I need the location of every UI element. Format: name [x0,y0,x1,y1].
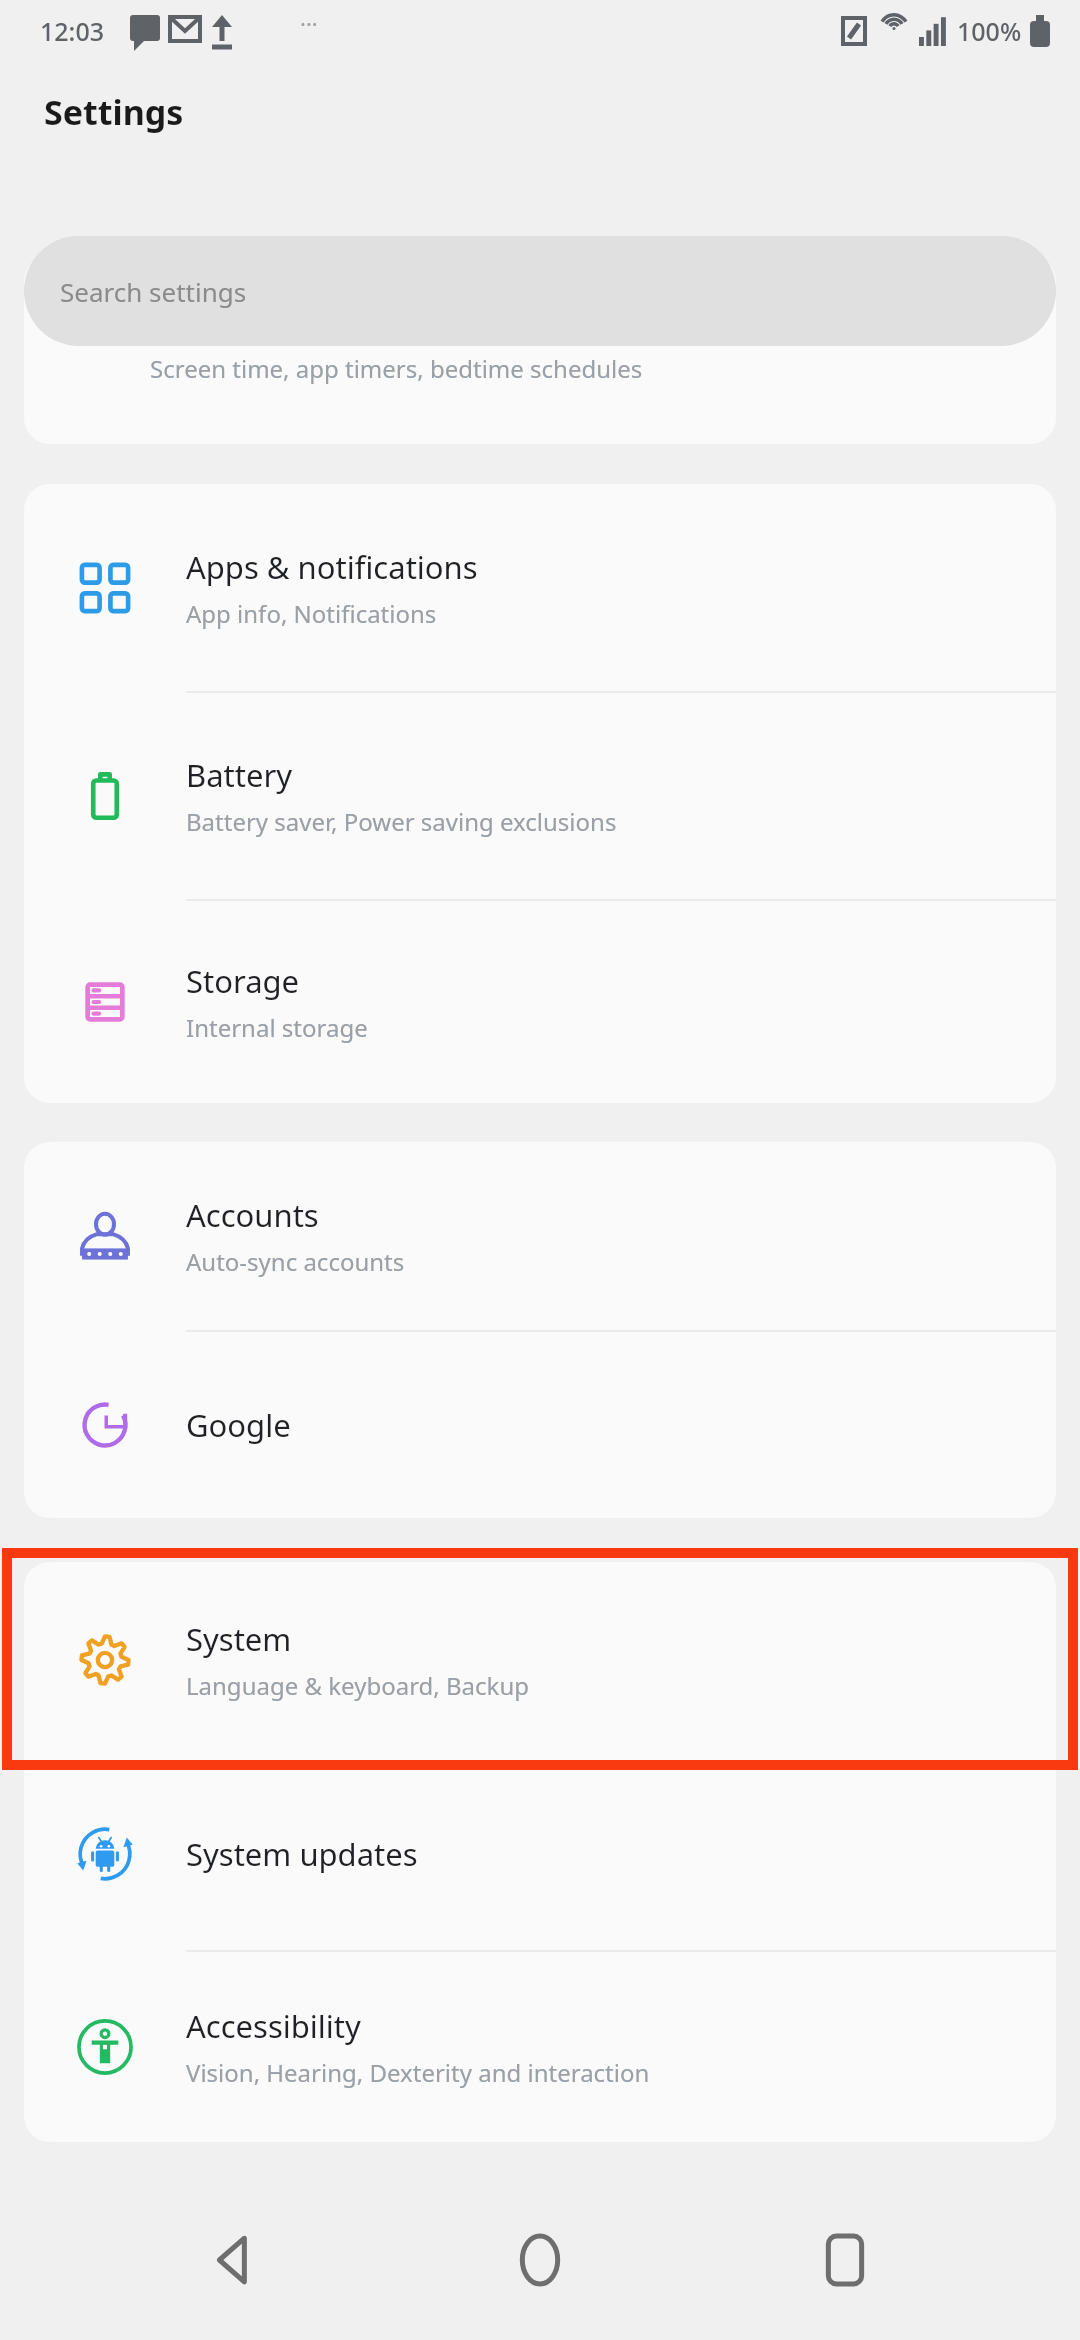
other: Google [74,1394,136,1456]
staticText: 12:03 [40,14,105,48]
other: Accounts [74,1205,136,1267]
staticText: ··· [300,8,318,38]
button[interactable]: Apps and notifications [24,484,1056,691]
staticText: App info, Notifications [186,597,437,630]
staticText: Screen time, app timers, bedtime schedul… [150,352,643,385]
button[interactable]: Google [24,1332,1056,1518]
staticText: Language & keyboard, Backup [186,1669,529,1702]
button[interactable]: System updates [24,1758,1056,1950]
staticText: Search settings [60,274,247,309]
staticText: Internal storage [186,1011,368,1044]
staticText: Accounts [186,1194,319,1236]
other: Accessibility [74,2016,136,2078]
button[interactable]: Accessibility [24,1952,1056,2142]
other: Storage [74,971,136,1033]
button[interactable]: Screen time, app timers, bedtime schedul… [24,256,1056,444]
staticText: Apps & notifications [186,546,478,588]
staticText: Accessibility [186,2005,361,2047]
staticText: Battery saver, Power saving exclusions [186,805,617,838]
staticText: Auto-sync accounts [186,1245,405,1278]
button[interactable]: Search settings [24,236,1056,346]
button[interactable]: Recent apps [790,2205,900,2315]
button[interactable]: Back [180,2205,290,2315]
other: System [74,1629,136,1691]
staticText: System [186,1618,292,1660]
button[interactable]: Accounts [24,1142,1056,1330]
button[interactable]: Battery [24,693,1056,899]
staticText: Vision, Hearing, Dexterity and interacti… [186,2056,650,2089]
button[interactable]: Home [485,2205,595,2315]
staticText: System updates [186,1833,418,1875]
staticText: Storage [186,960,300,1002]
button[interactable]: Search settings [24,236,1056,346]
other: System updates [74,1823,136,1885]
button[interactable]: System [24,1562,1056,1758]
staticText: Google [186,1404,291,1446]
staticText: 100% [957,14,1022,48]
staticText: Settings [44,89,184,135]
staticText: Search settings [60,274,247,309]
button[interactable]: Storage [24,901,1056,1103]
other: Apps and notifications [74,557,136,619]
other: Battery [74,765,136,827]
staticText: Battery [186,754,293,796]
